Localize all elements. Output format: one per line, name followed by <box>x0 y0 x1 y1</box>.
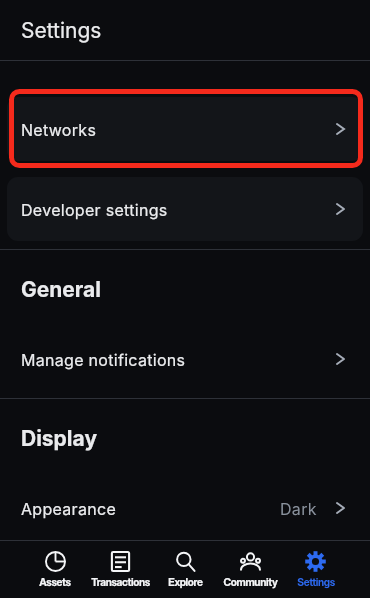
button[interactable]: Developer settings <box>7 177 363 241</box>
staticText: Settings <box>21 18 102 43</box>
staticText: General <box>21 277 102 302</box>
button[interactable]: Settings <box>283 541 348 598</box>
button[interactable]: Appearance <box>0 477 370 539</box>
button[interactable]: Transactions <box>88 541 153 598</box>
button[interactable]: Manage notifications <box>0 328 370 390</box>
button[interactable]: Explore <box>153 541 218 598</box>
staticText: Developer settings <box>21 200 168 219</box>
button[interactable]: Community <box>218 541 283 598</box>
staticText: Appearance <box>21 499 117 518</box>
staticText: Display <box>21 426 98 451</box>
staticText: Settings <box>297 576 335 589</box>
staticText: Assets <box>39 576 71 589</box>
staticText: Networks <box>21 120 97 139</box>
staticText: Manage notifications <box>21 350 186 369</box>
staticText: Explore <box>168 576 203 589</box>
staticText: Transactions <box>91 576 150 589</box>
button[interactable]: Networks <box>7 97 363 161</box>
button[interactable]: Assets <box>22 541 88 598</box>
staticText: Dark <box>280 499 317 518</box>
staticText: Community <box>223 576 278 589</box>
